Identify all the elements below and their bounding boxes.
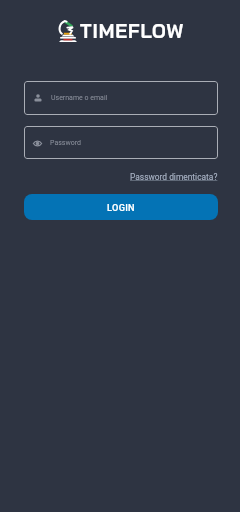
staticText: LOGIN — [107, 202, 135, 213]
staticText: Password — [50, 139, 81, 147]
staticText: Username o email — [51, 94, 108, 102]
button[interactable]: LOGIN — [24, 194, 218, 220]
button[interactable]: Username o email — [24, 81, 218, 115]
staticText: Password dimenticata? — [130, 172, 218, 182]
staticText: TIMEFLOW — [80, 19, 185, 43]
button[interactable]: Password dimenticata? — [130, 172, 218, 182]
button[interactable]: Password — [24, 126, 218, 159]
